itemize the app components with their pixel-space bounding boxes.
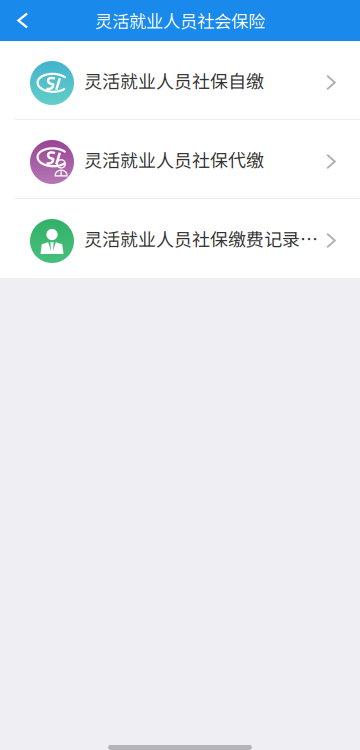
- staticText: 灵活就业人员社保自缴: [84, 67, 264, 94]
- button[interactable]: 灵活就业人员社保自缴: [0, 41, 360, 120]
- staticText: 灵活就业人员社保缴费记录…: [84, 225, 318, 252]
- button[interactable]: 灵活就业人员社保缴费记录…: [0, 199, 360, 278]
- staticText: 灵活就业人员社保代缴: [84, 146, 264, 173]
- button[interactable]: Back: [0, 0, 50, 41]
- button[interactable]: 灵活就业人员社保代缴: [0, 120, 360, 199]
- staticText: 灵活就业人员社会保险: [95, 8, 265, 33]
